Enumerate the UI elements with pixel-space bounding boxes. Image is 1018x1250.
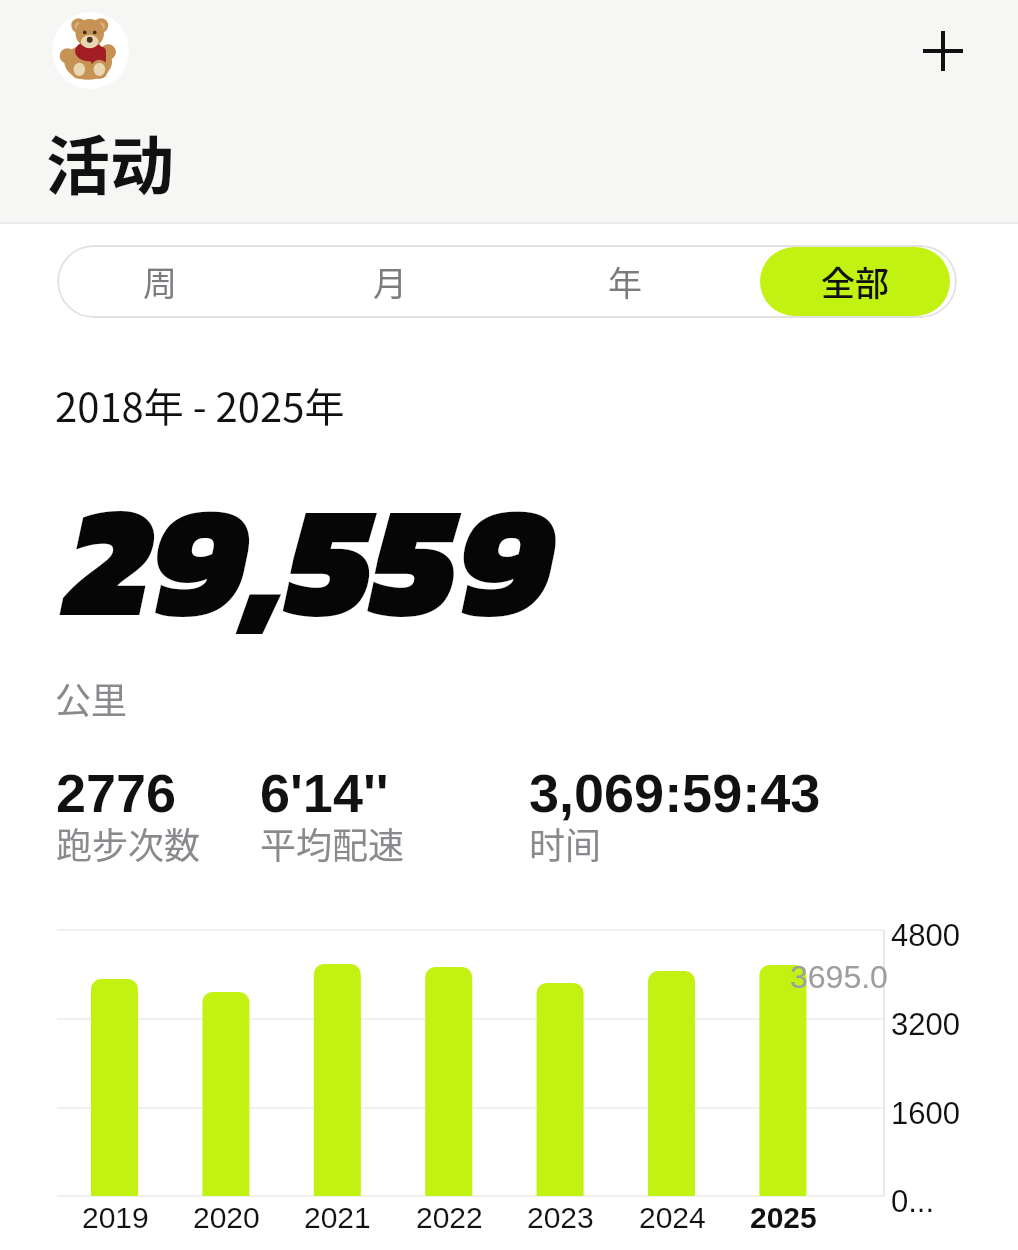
staticText: 2025 xyxy=(750,1201,817,1235)
staticText: 4800 xyxy=(891,918,960,953)
button[interactable]: 全部 xyxy=(760,247,950,316)
button[interactable] xyxy=(910,18,976,84)
staticText: 2024 xyxy=(639,1201,706,1235)
staticText: 2776 xyxy=(56,763,177,823)
staticText: 平均配速 xyxy=(260,817,405,869)
staticText: 全部 xyxy=(821,257,889,306)
staticText: 3,069:59:43 xyxy=(529,763,821,823)
staticText: 2022 xyxy=(416,1201,483,1235)
staticText: 0... xyxy=(891,1184,935,1219)
button[interactable]: 周 xyxy=(63,245,257,318)
staticText: 2018年 - 2025年 xyxy=(55,376,345,434)
staticText: 1600 xyxy=(891,1096,960,1131)
staticText: 跑步次数 xyxy=(56,817,201,869)
staticText: 时间 xyxy=(529,817,602,869)
button[interactable]: 年 xyxy=(528,245,722,318)
staticText: 3200 xyxy=(891,1007,960,1042)
button[interactable]: 月 xyxy=(293,245,487,318)
staticText: 2019 xyxy=(82,1201,149,1235)
staticText: 活动 xyxy=(46,115,174,208)
staticText: 年 xyxy=(608,257,642,306)
staticText: 29,559 xyxy=(66,441,553,677)
button[interactable] xyxy=(52,12,129,89)
staticText: 3695.0 xyxy=(790,959,888,995)
staticText: 2021 xyxy=(304,1201,371,1235)
staticText: 公里 xyxy=(55,672,128,724)
staticText: 月 xyxy=(373,257,407,306)
staticText: 6'14'' xyxy=(260,763,389,823)
staticText: 2023 xyxy=(527,1201,594,1235)
staticText: 周 xyxy=(143,257,177,306)
staticText: 2020 xyxy=(193,1201,260,1235)
